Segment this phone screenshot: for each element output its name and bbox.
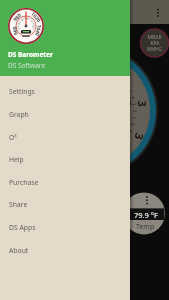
staticText: KPA <box>150 40 160 47</box>
staticText: Share <box>9 200 28 209</box>
staticText: MMHG <box>147 46 162 52</box>
staticText: Temp <box>136 222 155 232</box>
staticText: 32 <box>129 100 149 111</box>
button[interactable]: Settings <box>0 80 130 102</box>
staticText: O³ <box>9 133 17 142</box>
button[interactable]: DS Apps <box>0 216 130 238</box>
staticText: About <box>9 246 29 255</box>
staticText: Help <box>9 155 24 164</box>
staticText: 1020 <box>29 11 43 24</box>
staticText: DS Apps <box>9 223 36 232</box>
staticText: 980 <box>12 12 23 23</box>
button[interactable]: Temperature options <box>143 195 151 203</box>
staticText: Graph <box>9 110 29 119</box>
staticText: 79.9 °F <box>134 210 158 220</box>
staticText: 33 <box>125 130 148 146</box>
button[interactable]: Help <box>0 148 130 170</box>
staticText: Purchase <box>9 178 39 187</box>
button[interactable]: About <box>0 239 130 261</box>
button[interactable]: Share <box>0 193 130 215</box>
staticText: MBAR <box>147 34 162 41</box>
button[interactable]: O³ <box>0 126 130 148</box>
staticText: 1040 <box>33 24 43 37</box>
button[interactable]: More options <box>154 8 162 16</box>
staticText: Settings <box>9 87 35 96</box>
button[interactable]: Graph <box>0 103 130 125</box>
staticText: 960 <box>11 25 20 36</box>
button[interactable]: Purchase <box>0 171 130 193</box>
staticText: DS Barometer <box>8 50 53 59</box>
staticText: DS Software <box>8 61 46 70</box>
